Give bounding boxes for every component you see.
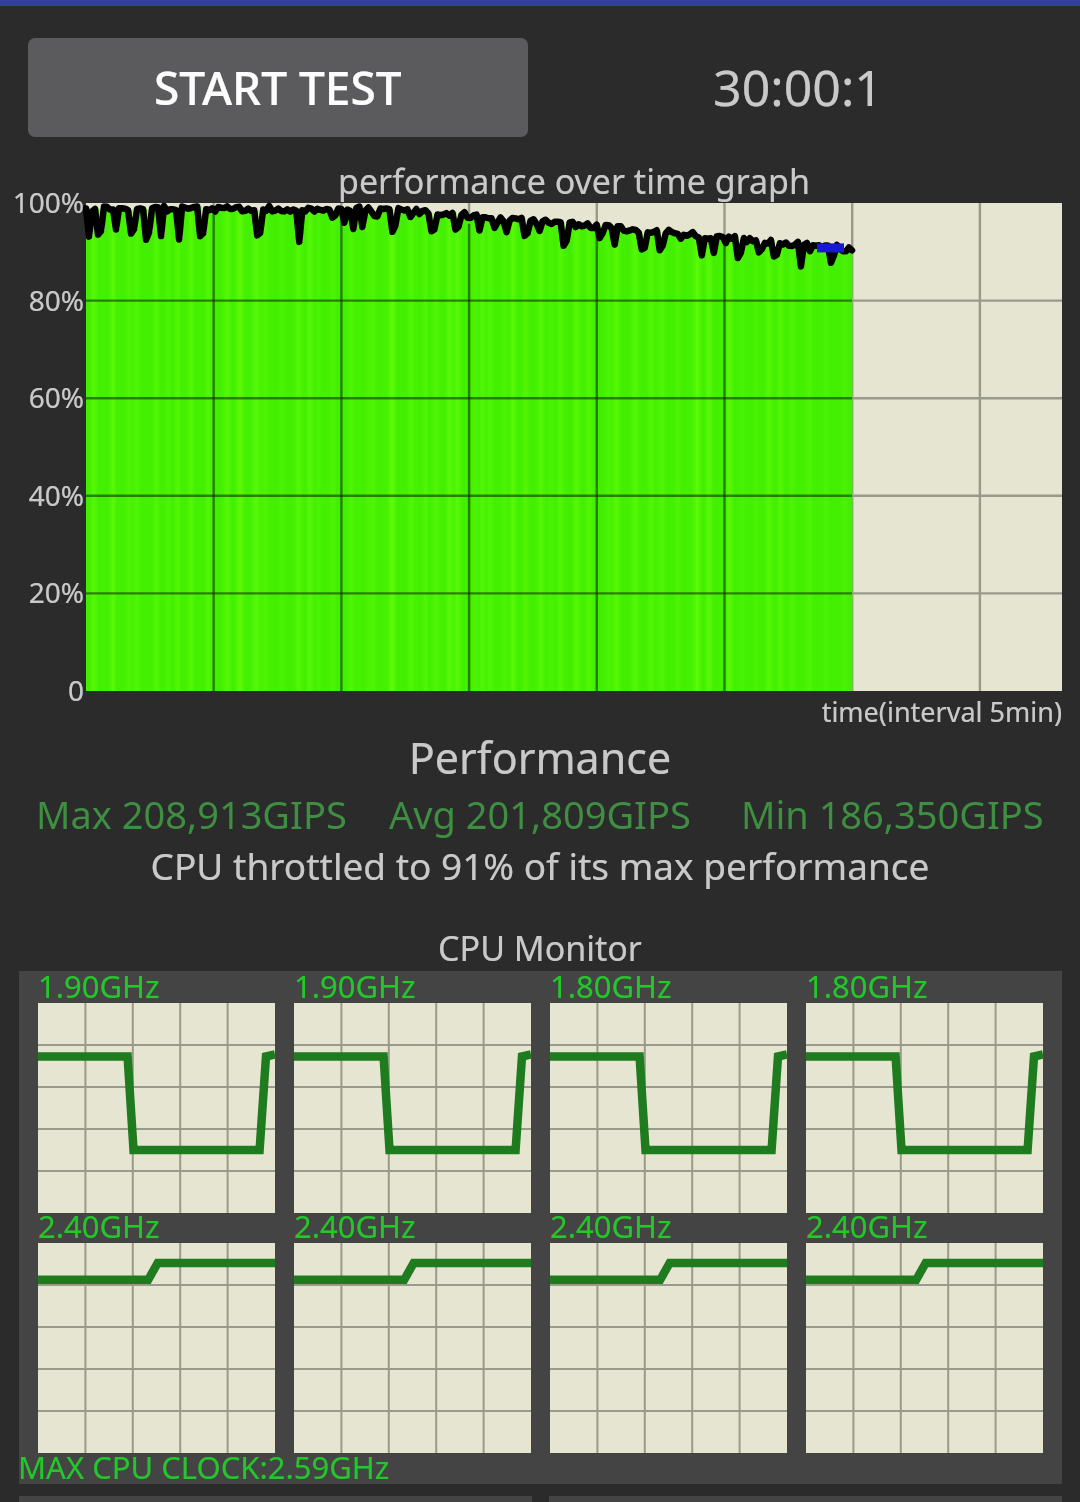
staticText: Avg 201,809GIPS [389,788,691,840]
staticText: 0 [0,671,84,709]
staticText: Max 208,913GIPS [36,788,347,840]
staticText: MAX CPU CLOCK:2.59GHz [18,1446,390,1488]
staticText: 2.40GHz [38,1205,160,1247]
staticText: 1.80GHz [806,965,928,1007]
staticText: 30:00:1 [560,53,1036,121]
staticText: CPU Monitor [0,925,1080,971]
staticText: 1.90GHz [294,965,416,1007]
staticText: 1.90GHz [38,965,160,1007]
staticText: performance over time graph [86,158,1062,204]
staticText: 80% [0,281,84,319]
staticText: 2.40GHz [550,1205,672,1247]
staticText: Performance [0,728,1080,787]
staticText: START TEST [154,56,402,119]
button[interactable]: START TEST [28,38,528,137]
staticText: CPU throttled to 91% of its max performa… [0,840,1080,890]
staticText: 2.40GHz [294,1205,416,1247]
staticText: 40% [0,476,84,514]
staticText: time(interval 5min) [560,693,1062,730]
staticText: 60% [0,378,84,416]
staticText: 2.40GHz [806,1205,928,1247]
staticText: 20% [0,573,84,611]
staticText: 1.80GHz [550,965,672,1007]
staticText: Min 186,350GIPS [741,788,1044,840]
staticText: 100% [0,183,84,221]
